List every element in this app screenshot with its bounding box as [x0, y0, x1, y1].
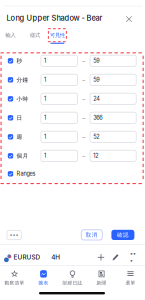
staticText: 分鐘 [17, 76, 29, 83]
staticText: 12 [93, 152, 98, 159]
staticText: 可見性 [50, 32, 65, 38]
button[interactable]: 觀察清單 [0, 266, 29, 289]
staticText: 366 [93, 114, 102, 121]
staticText: – [82, 95, 85, 102]
staticText: 24 [93, 95, 100, 102]
button[interactable]: 樣式 [27, 28, 43, 42]
staticText: 選單 [125, 280, 135, 286]
button[interactable]: Close [122, 13, 135, 26]
button[interactable]: 可見性 [48, 28, 67, 44]
staticText: Long Upper Shadow - Bear [6, 14, 102, 23]
staticText: 取消 [86, 231, 98, 238]
button[interactable]: More [126, 251, 139, 263]
staticText: 日 [17, 114, 23, 121]
staticText: 新聞 [96, 280, 106, 286]
button[interactable]: Ranges [8, 165, 136, 182]
button[interactable]: 新聞 [87, 266, 116, 289]
staticText: Ranges [17, 170, 36, 177]
button[interactable]: 輸入 [2, 28, 18, 42]
button[interactable]: Add [95, 252, 107, 263]
button[interactable]: 日 [8, 108, 136, 127]
staticText: 1 [44, 57, 46, 64]
staticText: 1 [44, 133, 46, 140]
staticText: 確認 [117, 231, 129, 238]
button[interactable]: 取消 [81, 230, 102, 240]
staticText: 1 [44, 152, 46, 159]
staticText: 輸入 [5, 32, 15, 38]
staticText: – [82, 152, 85, 159]
staticText: 圖表 [38, 280, 48, 286]
button[interactable]: 個月 [8, 146, 136, 165]
staticText: 個月 [17, 152, 29, 159]
button[interactable]: 確認 [111, 230, 134, 240]
staticText: 52 [93, 133, 99, 140]
button[interactable]: 分鐘 [8, 70, 136, 89]
staticText: – [82, 76, 85, 83]
staticText: 59 [93, 76, 99, 83]
button[interactable]: 秒 [8, 51, 136, 70]
staticText: 1 [44, 76, 46, 83]
button[interactable]: 圖表 [29, 266, 58, 289]
staticText: 4H [51, 253, 60, 261]
staticText: 秒 [17, 57, 23, 64]
staticText: EURUSD [13, 253, 40, 261]
button[interactable]: 小時 [8, 89, 136, 108]
staticText: 財經日誌 [62, 280, 82, 286]
staticText: – [82, 133, 85, 140]
staticText: 週 [17, 133, 23, 140]
button[interactable]: 週 [8, 127, 136, 146]
staticText: ••• [130, 250, 136, 264]
staticText: 1 [44, 95, 46, 102]
staticText: 觀察清單 [4, 280, 24, 286]
staticText: ••• [10, 232, 19, 238]
staticText: – [82, 114, 85, 121]
staticText: 樣式 [30, 32, 40, 38]
button[interactable]: 選單 [116, 266, 145, 289]
staticText: – [82, 57, 85, 64]
staticText: 1 [44, 114, 46, 121]
button[interactable]: More options [7, 230, 21, 240]
button[interactable]: Draw [110, 251, 121, 263]
button[interactable]: 財經日誌 [58, 266, 87, 289]
staticText: 小時 [17, 95, 29, 102]
staticText: 59 [93, 57, 99, 64]
